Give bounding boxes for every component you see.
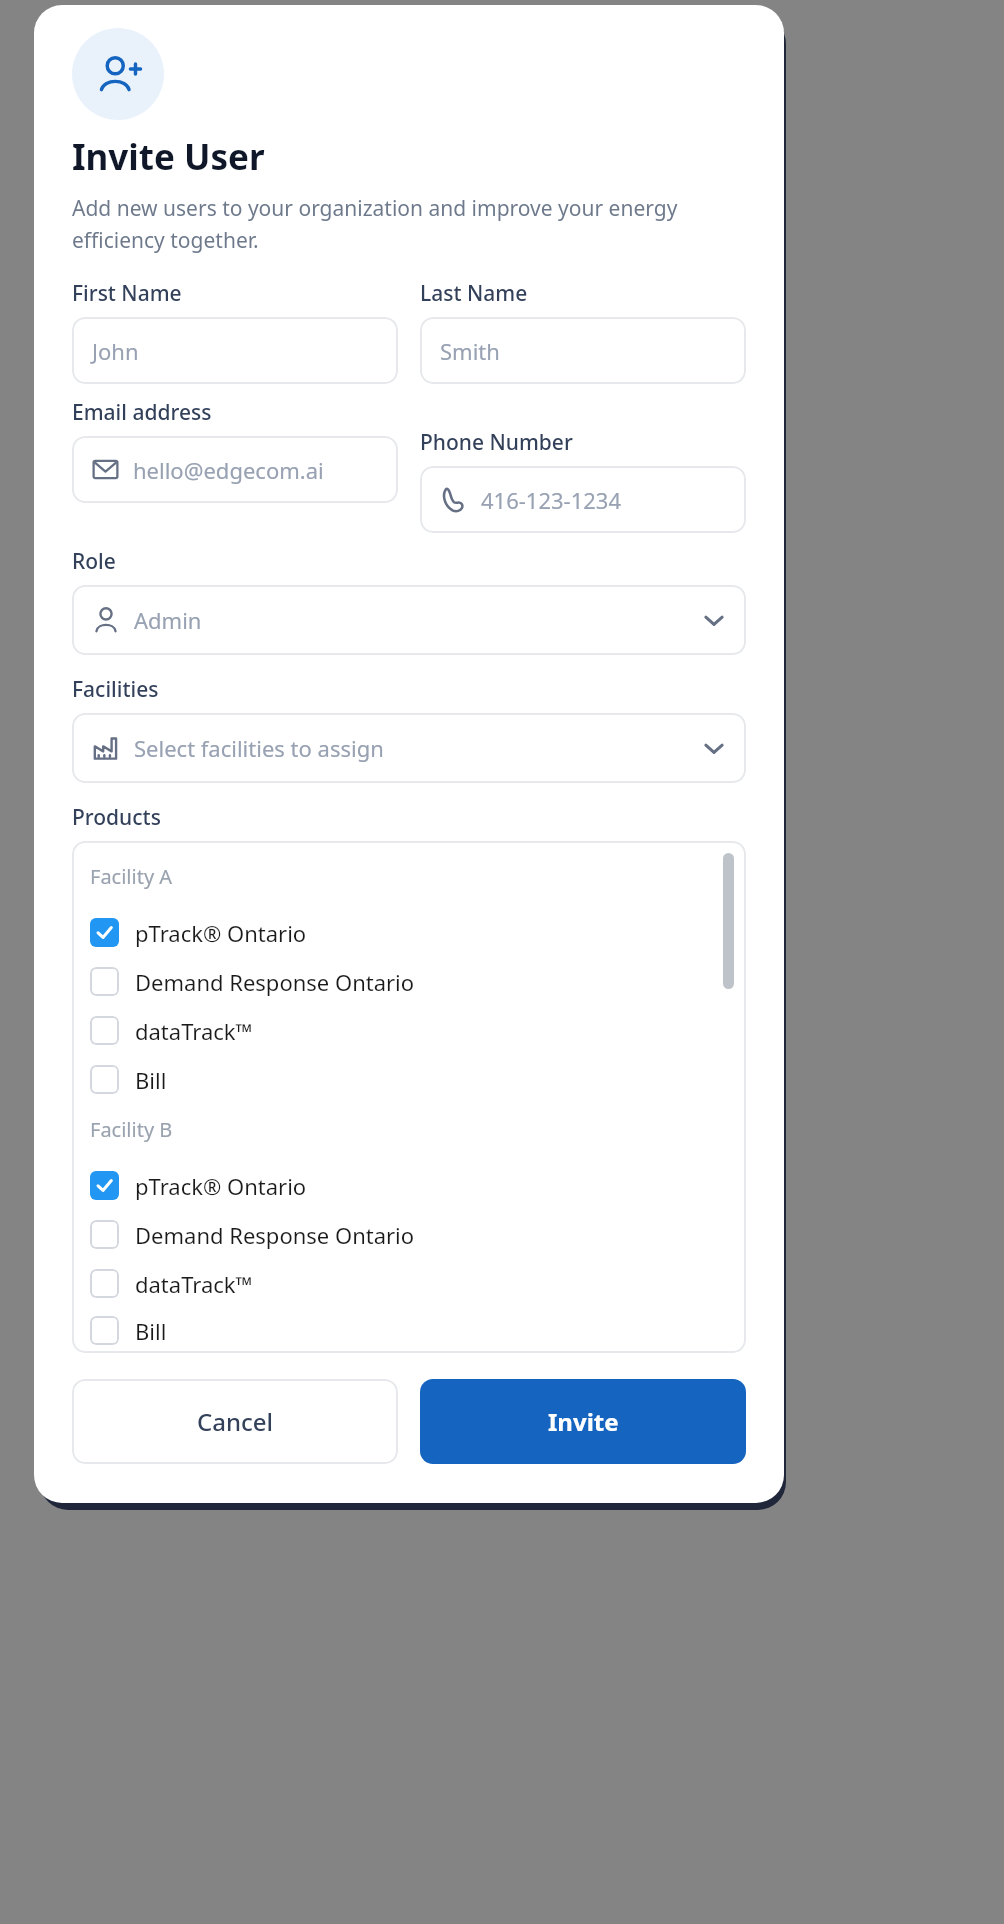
staticText: 416-123-1234 <box>481 485 622 515</box>
staticText: Smith <box>440 336 500 366</box>
staticText: Last Name <box>420 279 528 308</box>
button[interactable]: 416-123-1234 <box>420 466 746 533</box>
button[interactable]: Demand Response Ontario <box>90 1210 728 1259</box>
staticText: Facility B <box>90 1116 173 1143</box>
staticText: Add new users to your organization and i… <box>72 194 746 254</box>
staticText: Email address <box>72 398 212 427</box>
button[interactable]: dataTrack™ <box>90 1259 728 1308</box>
button[interactable]: John <box>72 317 398 384</box>
button[interactable]: dataTrack™ <box>90 1006 728 1055</box>
staticText: Bill <box>135 1316 167 1346</box>
staticText: Admin <box>134 605 702 635</box>
button[interactable]: Demand Response Ontario <box>90 957 728 1006</box>
staticText: Select facilities to assign <box>134 733 702 763</box>
staticText: Demand Response Ontario <box>135 1220 415 1250</box>
staticText: Invite User <box>72 133 265 181</box>
button[interactable]: Cancel <box>72 1379 398 1464</box>
staticText: Cancel <box>197 1405 274 1438</box>
button[interactable]: pTrack® Ontario <box>90 1161 728 1210</box>
staticText: Invite <box>548 1405 619 1438</box>
button[interactable]: Bill <box>90 1055 728 1104</box>
staticText: Bill <box>135 1065 167 1095</box>
staticText: dataTrack™ <box>135 1269 253 1299</box>
button[interactable]: Select facilities to assign <box>72 713 746 783</box>
button[interactable]: hello@edgecom.ai <box>72 436 398 503</box>
staticText: Role <box>72 547 116 576</box>
button[interactable]: Invite <box>420 1379 746 1464</box>
staticText: Facility A <box>90 863 173 890</box>
staticText: Products <box>72 803 161 832</box>
staticText: dataTrack™ <box>135 1016 253 1046</box>
staticText: Demand Response Ontario <box>135 967 415 997</box>
staticText: pTrack® Ontario <box>135 918 307 948</box>
button[interactable]: Bill <box>90 1308 728 1353</box>
button[interactable]: Admin <box>72 585 746 655</box>
staticText: pTrack® Ontario <box>135 1171 307 1201</box>
staticText: First Name <box>72 279 182 308</box>
staticText: Facilities <box>72 675 159 704</box>
staticText: hello@edgecom.ai <box>133 455 324 485</box>
button[interactable]: pTrack® Ontario <box>90 908 728 957</box>
staticText: Phone Number <box>420 428 573 457</box>
staticText: John <box>92 336 139 366</box>
button[interactable]: Smith <box>420 317 746 384</box>
